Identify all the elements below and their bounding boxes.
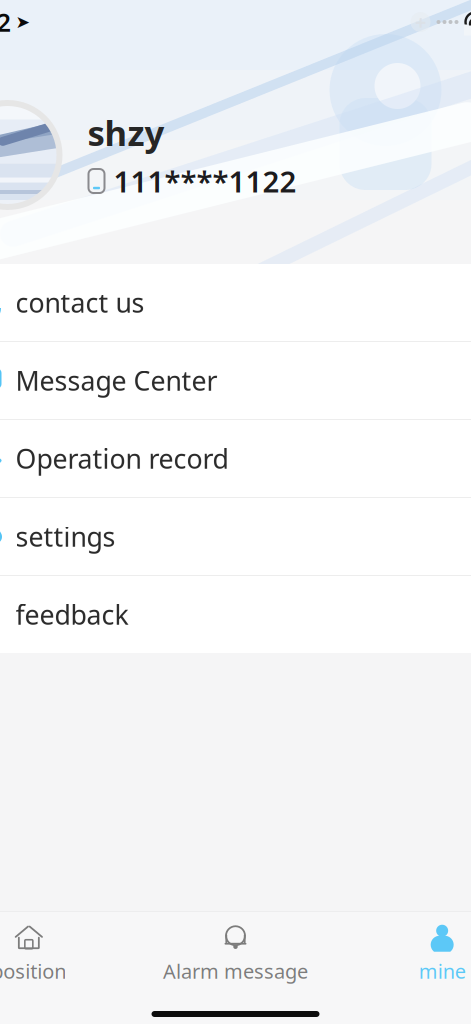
button[interactable]: settings bbox=[0, 498, 471, 575]
staticText: Alarm message bbox=[163, 958, 308, 984]
button[interactable]: mine bbox=[339, 920, 471, 988]
staticText: 111****1122 bbox=[113, 161, 296, 200]
button[interactable]: position bbox=[0, 920, 132, 988]
staticText: mine bbox=[419, 958, 466, 984]
button[interactable]: contact us bbox=[0, 264, 471, 341]
button[interactable]: Message Center bbox=[0, 342, 471, 419]
staticText: shzy bbox=[87, 109, 164, 155]
button[interactable]: Alarm message bbox=[132, 920, 339, 988]
staticText: + bbox=[415, 9, 426, 35]
staticText: feedback bbox=[15, 597, 128, 632]
button[interactable]: feedback bbox=[0, 576, 471, 653]
staticText: settings bbox=[15, 519, 115, 554]
staticText: contact us bbox=[15, 285, 144, 320]
staticText: 10:22 bbox=[0, 5, 10, 39]
staticText: ➤ bbox=[15, 12, 30, 32]
staticText: position bbox=[0, 958, 66, 984]
staticText: Operation record bbox=[15, 441, 228, 476]
button[interactable]: Operation record bbox=[0, 420, 471, 497]
staticText: Message Center bbox=[15, 363, 217, 398]
